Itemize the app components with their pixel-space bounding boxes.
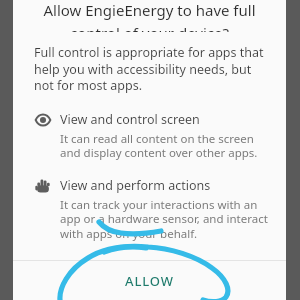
staticText: It can read all content on the screen an… (60, 131, 270, 161)
staticText: View and control screen (60, 111, 200, 128)
staticText: Full control is appropriate for apps tha… (34, 44, 268, 93)
staticText: ALLOW (125, 272, 174, 290)
staticText: It can track your interactions with an a… (60, 197, 270, 242)
button[interactable]: View and perform actions (13, 177, 286, 242)
button[interactable]: View and control screen (13, 111, 286, 161)
staticText: View and perform actions (60, 177, 211, 194)
button[interactable]: ALLOW (13, 261, 286, 300)
other: View and perform actions (34, 177, 52, 195)
staticText: Allow EngieEnergy to have full (43, 0, 256, 20)
other: View and control screen (34, 111, 52, 129)
staticText: control of your device? (70, 23, 229, 32)
